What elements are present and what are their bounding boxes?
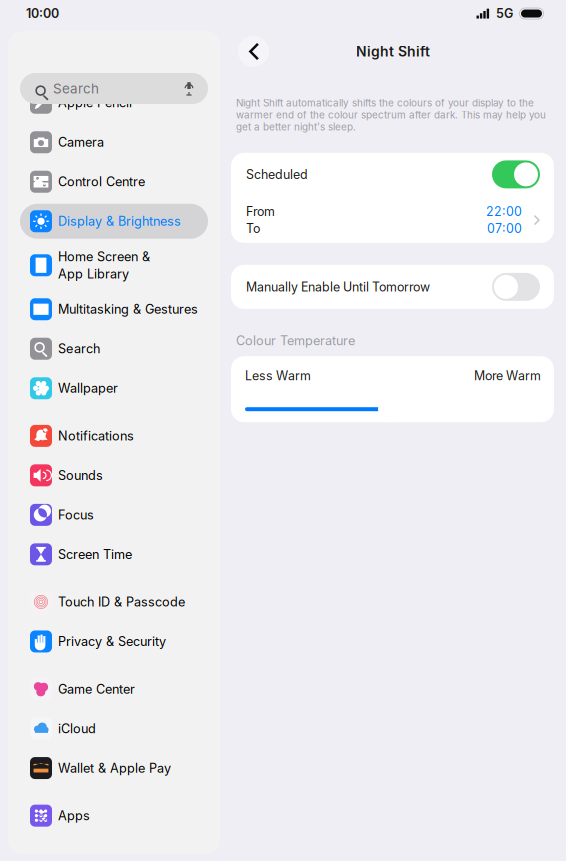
staticText: App Library [58,266,129,281]
button[interactable]: Notifications [20,416,208,456]
button[interactable]: Focus [20,495,208,535]
button[interactable]: Scheduled [231,153,554,196]
staticText: Focus [58,507,94,522]
button[interactable]: Touch ID & Passcode [20,582,208,622]
button[interactable]: Wallpaper [20,368,208,408]
staticText: Wallet & Apple Pay [58,760,171,776]
button[interactable]: Sounds [20,456,208,495]
staticText: Notifications [58,428,134,443]
staticText: Apps [58,808,90,823]
staticText: Control Centre [58,174,145,189]
staticText: Game Center [58,681,135,697]
button[interactable]: Back [238,36,269,67]
button[interactable]: Manually Enable Until Tomorrow [231,265,554,309]
staticText: Multitasking & Gestures [58,302,198,317]
button[interactable]: Wallet & Apple Pay [20,748,208,788]
staticText: Wallpaper [58,381,118,396]
staticText: To [246,221,260,236]
staticText: Night Shift [356,43,430,60]
staticText: Home Screen & [58,249,150,264]
button[interactable]: Home Screen & [20,241,208,289]
staticText: iCloud [58,721,96,736]
button[interactable]: Apps [20,796,208,835]
button[interactable]: Privacy & Security [20,622,208,661]
button[interactable]: Search [20,73,208,104]
staticText: Camera [58,135,104,150]
staticText: Manually Enable Until Tomorrow [246,279,430,294]
staticText: 07:00 [487,221,522,236]
staticText: Privacy & Security [58,634,166,649]
button[interactable]: iCloud [20,709,208,748]
button[interactable]: Game Center [20,669,208,709]
button[interactable]: Camera [20,122,208,162]
staticText: Display & Brightness [58,214,181,229]
button[interactable]: Apple Pencil [20,83,208,122]
button[interactable]: Search [20,329,208,368]
staticText: Search [53,80,99,97]
staticText: Touch ID & Passcode [58,594,185,610]
staticText: Night Shift automatically shifts the col… [236,97,546,133]
staticText: More Warm [474,368,541,383]
button[interactable]: From [231,197,554,243]
staticText: Less Warm [245,368,311,383]
staticText: 5G [496,6,513,21]
staticText: Sounds [58,468,103,483]
staticText: Screen Time [58,547,132,562]
button[interactable]: Display & Brightness [20,201,208,241]
staticText: Apple Pencil [58,95,132,110]
staticText: 10:00 [26,6,59,21]
button[interactable]: Screen Time [20,535,208,574]
staticText: Colour Temperature [236,333,355,348]
staticText: Search [58,341,100,356]
staticText: From [246,204,275,219]
staticText: Scheduled [246,167,308,182]
button[interactable]: Control Centre [20,162,208,201]
button[interactable]: Multitasking & Gestures [20,289,208,329]
staticText: 22:00 [486,204,522,219]
